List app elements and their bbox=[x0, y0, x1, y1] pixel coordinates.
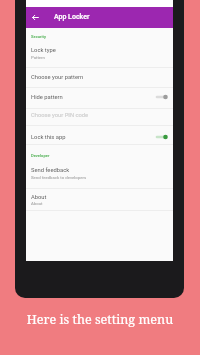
button[interactable] bbox=[26, 161, 173, 188]
staticText: Send feedback to developers bbox=[31, 175, 87, 180]
staticText: Pattern bbox=[31, 55, 45, 60]
button[interactable] bbox=[26, 188, 173, 210]
button[interactable] bbox=[26, 108, 173, 125]
staticText: Lock type bbox=[31, 47, 56, 54]
staticText: Choose your PIN code bbox=[31, 112, 89, 119]
staticText: Developer bbox=[31, 153, 50, 158]
staticText: Hide pattern bbox=[31, 94, 63, 101]
button[interactable] bbox=[26, 87, 173, 108]
staticText: Choose your pattern bbox=[31, 74, 84, 81]
button[interactable] bbox=[26, 42, 173, 67]
staticText: Security bbox=[31, 34, 46, 39]
staticText: App Locker bbox=[54, 13, 90, 21]
staticText: About bbox=[31, 201, 43, 206]
staticText: Here is the setting menu bbox=[0, 311, 200, 328]
staticText: About bbox=[31, 194, 47, 201]
button[interactable] bbox=[26, 67, 173, 87]
button[interactable]: Off bbox=[155, 92, 168, 102]
button[interactable] bbox=[26, 125, 173, 145]
staticText: Lock this app bbox=[31, 134, 66, 141]
staticText: Send feedback bbox=[31, 167, 70, 174]
button[interactable]: Back bbox=[29, 11, 42, 24]
button[interactable]: On bbox=[155, 132, 168, 142]
